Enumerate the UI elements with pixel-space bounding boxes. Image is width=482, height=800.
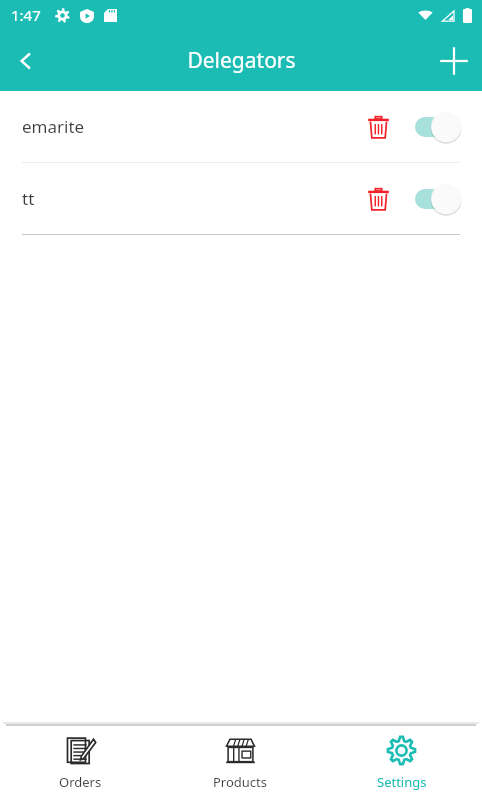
button[interactable]: Products <box>160 726 321 800</box>
button[interactable]: Settings <box>321 726 482 800</box>
button[interactable]: Delete emarite <box>356 105 400 149</box>
staticText: Delegators <box>187 46 296 75</box>
button[interactable]: Add <box>426 33 482 89</box>
button[interactable]: Delete tt <box>356 177 400 221</box>
staticText: Orders <box>59 773 102 791</box>
staticText: Products <box>213 773 268 791</box>
staticText: Settings <box>377 773 427 791</box>
staticText: tt <box>22 187 35 210</box>
button[interactable]: Orders <box>0 726 160 800</box>
button[interactable]: Back <box>0 35 52 87</box>
button[interactable]: tt <box>0 163 482 235</box>
button[interactable]: Toggle emarite <box>414 105 468 149</box>
button[interactable]: Toggle tt <box>414 177 468 221</box>
staticText: 1:47 <box>11 5 41 25</box>
staticText: emarite <box>22 115 85 138</box>
button[interactable]: emarite <box>0 91 482 163</box>
